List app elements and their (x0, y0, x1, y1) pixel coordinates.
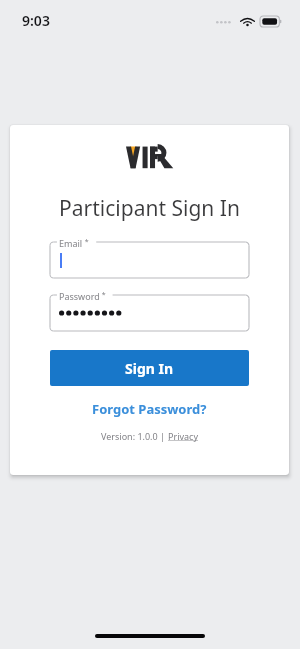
button[interactable]: Forgot Password? (84, 397, 215, 421)
button[interactable]: Privacy (168, 430, 199, 442)
staticText: * (83, 237, 89, 247)
button[interactable]: Email (50, 242, 249, 278)
staticText: Sign In (125, 359, 174, 378)
button[interactable]: Password (50, 295, 249, 331)
staticText: Version: 1.0.0 | (101, 430, 168, 442)
staticText: 9:03 (22, 11, 50, 30)
staticText: Participant Sign In (59, 194, 240, 223)
staticText: * (100, 290, 106, 300)
staticText: Email (59, 237, 83, 249)
staticText: Password (59, 290, 100, 302)
button[interactable]: Sign In (50, 350, 249, 386)
staticText: Privacy (168, 430, 199, 442)
other: Home indicator (0, 627, 300, 649)
staticText: Forgot Password? (92, 400, 207, 418)
